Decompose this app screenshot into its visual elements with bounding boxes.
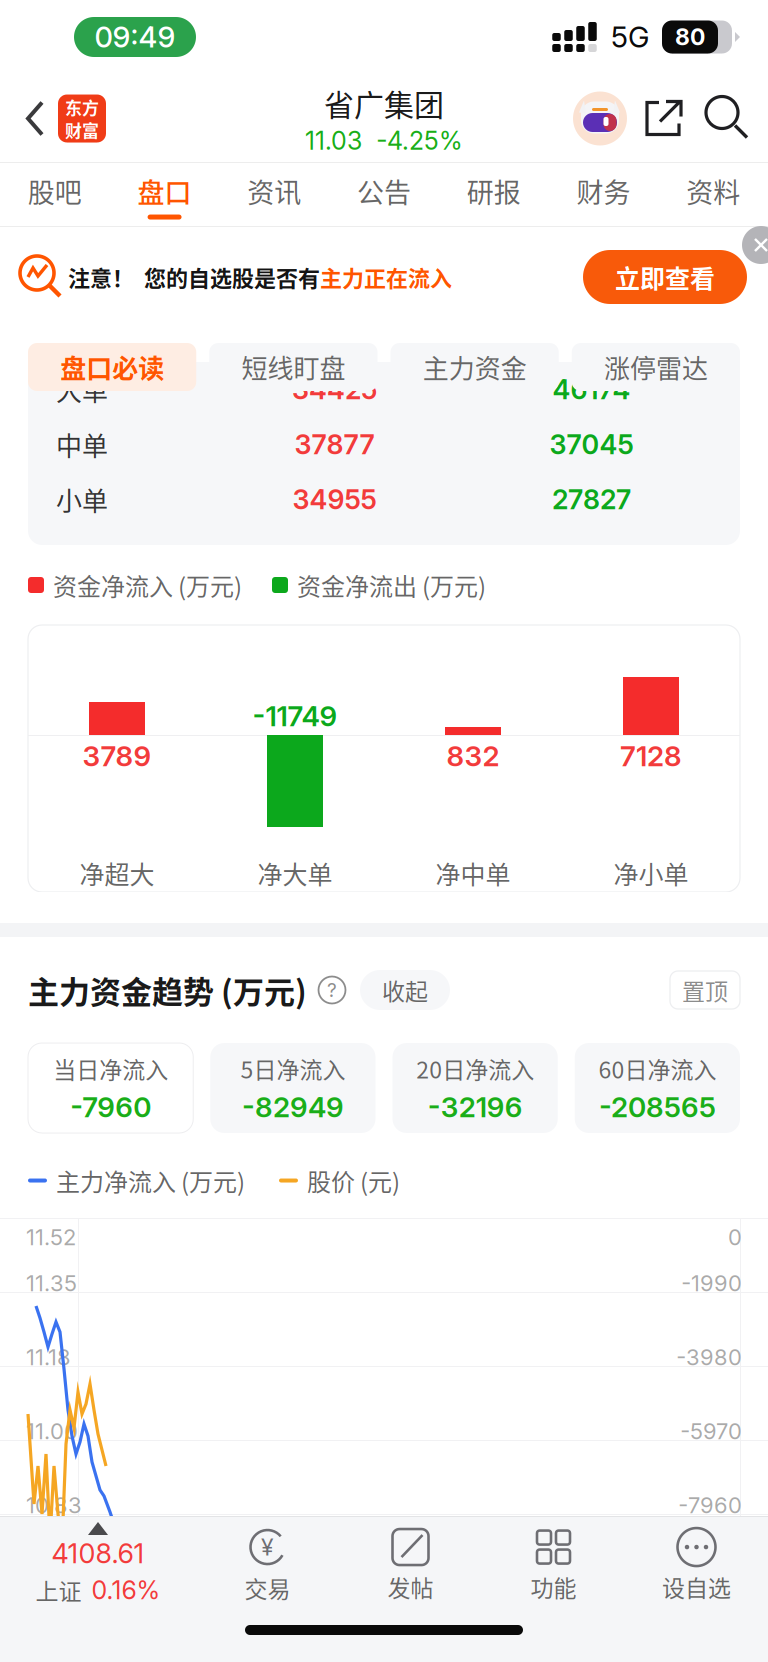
staticText: 7128 bbox=[620, 739, 682, 773]
button[interactable]: 主力资金 bbox=[390, 343, 559, 391]
button[interactable]: 盘口 bbox=[110, 162, 219, 228]
staticText: -3980 bbox=[676, 1344, 742, 1371]
staticText: -5970 bbox=[680, 1418, 742, 1445]
staticText: -1990 bbox=[681, 1270, 742, 1297]
staticText: 短线盯盘 bbox=[241, 348, 345, 386]
staticText: 11.35 bbox=[26, 1270, 77, 1297]
staticText: 净小单 bbox=[613, 855, 688, 891]
button[interactable]: 功能 bbox=[482, 1526, 625, 1603]
staticText: 当日净流入 bbox=[53, 1052, 168, 1085]
staticText: 80 bbox=[675, 23, 705, 51]
staticText: 主力正在流入 bbox=[320, 261, 452, 293]
staticText: 财富 bbox=[65, 117, 99, 142]
button[interactable]: 涨停雷达 bbox=[572, 343, 740, 391]
staticText: 34425 bbox=[292, 373, 377, 406]
button[interactable]: 盘口必读 bbox=[28, 343, 196, 391]
staticText: 37877 bbox=[294, 428, 374, 461]
staticText: 0.16% bbox=[91, 1575, 160, 1605]
staticText: 盘口必读 bbox=[60, 348, 164, 386]
button[interactable]: 资讯 bbox=[219, 162, 329, 228]
button[interactable]: 短线盯盘 bbox=[209, 343, 377, 391]
button[interactable]: AI assistant bbox=[572, 90, 628, 146]
staticText: 财务 bbox=[576, 171, 630, 211]
staticText: 中单 bbox=[56, 426, 108, 463]
staticText: 46174 bbox=[552, 373, 630, 406]
button[interactable]: Share bbox=[628, 99, 700, 137]
staticText: -7960 bbox=[678, 1492, 742, 1519]
staticText: 11.18 bbox=[26, 1344, 71, 1371]
button[interactable]: Help bbox=[307, 974, 348, 1006]
staticText: 3789 bbox=[82, 739, 151, 773]
staticText: 832 bbox=[446, 739, 499, 773]
button[interactable]: 公告 bbox=[329, 162, 439, 228]
staticText: 主力资金趋势 (万元) bbox=[28, 968, 307, 1012]
button[interactable]: 5日净流入 bbox=[210, 1043, 375, 1133]
staticText: 净大单 bbox=[257, 855, 332, 891]
staticText: 34955 bbox=[292, 483, 376, 516]
button[interactable]: 资料 bbox=[658, 162, 768, 228]
staticText: 主力资金 bbox=[423, 348, 527, 386]
staticText: 研报 bbox=[467, 171, 521, 211]
staticText: 0 bbox=[728, 1224, 742, 1251]
button[interactable]: 60日净流入 bbox=[575, 1043, 740, 1133]
button[interactable]: 立即查看 bbox=[583, 250, 747, 304]
staticText: 盘口 bbox=[138, 171, 192, 211]
staticText: 11.03 -4.25% bbox=[305, 126, 463, 156]
staticText: 收起 bbox=[382, 973, 428, 1007]
button[interactable]: Close banner bbox=[742, 226, 768, 264]
staticText: -208565 bbox=[599, 1090, 716, 1124]
staticText: 东方 bbox=[65, 95, 99, 119]
staticText: 股吧 bbox=[28, 171, 82, 211]
staticText: 5日净流入 bbox=[240, 1052, 345, 1085]
button[interactable]: 4108.61 bbox=[0, 1522, 196, 1607]
staticText: 20日净流入 bbox=[416, 1052, 534, 1085]
staticText: 上证 bbox=[35, 1573, 81, 1607]
staticText: -82949 bbox=[242, 1090, 344, 1124]
staticText: 设自选 bbox=[662, 1570, 731, 1603]
staticText: 大单 bbox=[56, 371, 108, 408]
staticText: 置顶 bbox=[682, 973, 728, 1007]
button[interactable]: 收起 bbox=[348, 970, 450, 1010]
staticText: 股价 (元) bbox=[307, 1163, 400, 1198]
staticText: 净超大 bbox=[79, 855, 154, 891]
button[interactable]: 当日净流入 bbox=[28, 1043, 193, 1133]
button[interactable]: Back bbox=[12, 85, 58, 151]
staticText: 交易 bbox=[244, 1571, 290, 1604]
staticText: 公告 bbox=[357, 171, 411, 211]
staticText: ¥ bbox=[261, 1533, 274, 1561]
staticText: 资料 bbox=[686, 171, 740, 211]
staticText: ? bbox=[327, 978, 337, 1001]
staticText: 09:49 bbox=[94, 19, 175, 55]
staticText: 小单 bbox=[56, 481, 108, 518]
button[interactable]: ¥ bbox=[196, 1525, 339, 1604]
staticText: 注意！ bbox=[68, 261, 134, 293]
staticText: 立即查看 bbox=[615, 259, 715, 295]
staticText: 净中单 bbox=[435, 855, 510, 891]
staticText: 5G bbox=[611, 19, 649, 55]
staticText: 11.52 bbox=[26, 1224, 76, 1251]
button[interactable]: Search bbox=[700, 96, 750, 140]
staticText: 60日净流入 bbox=[598, 1052, 716, 1085]
staticText: -11749 bbox=[252, 699, 337, 733]
button[interactable]: 20日净流入 bbox=[392, 1043, 558, 1133]
button[interactable]: 股吧 bbox=[0, 162, 110, 228]
staticText: 27827 bbox=[552, 483, 631, 516]
button[interactable]: 财务 bbox=[549, 162, 658, 228]
staticText: 10.83 bbox=[26, 1492, 82, 1519]
button[interactable]: 研报 bbox=[439, 162, 549, 228]
staticText: 您的自选股是否有 bbox=[134, 261, 320, 293]
button[interactable]: 置顶 bbox=[670, 971, 740, 1009]
staticText: 资金净流出 (万元) bbox=[297, 568, 486, 602]
button[interactable]: 发帖 bbox=[339, 1526, 482, 1603]
staticText: 4108.61 bbox=[51, 1537, 144, 1570]
button[interactable]: 设自选 bbox=[625, 1526, 768, 1603]
staticText: 资金净流入 (万元) bbox=[53, 568, 242, 602]
staticText: -7960 bbox=[70, 1090, 151, 1124]
staticText: -32196 bbox=[428, 1090, 523, 1124]
staticText: 涨停雷达 bbox=[604, 348, 708, 386]
staticText: 资讯 bbox=[247, 171, 301, 211]
staticText: 11.00 bbox=[26, 1418, 78, 1445]
staticText: 主力净流入 (万元) bbox=[56, 1163, 245, 1198]
staticText: 省广集团 bbox=[324, 81, 444, 125]
